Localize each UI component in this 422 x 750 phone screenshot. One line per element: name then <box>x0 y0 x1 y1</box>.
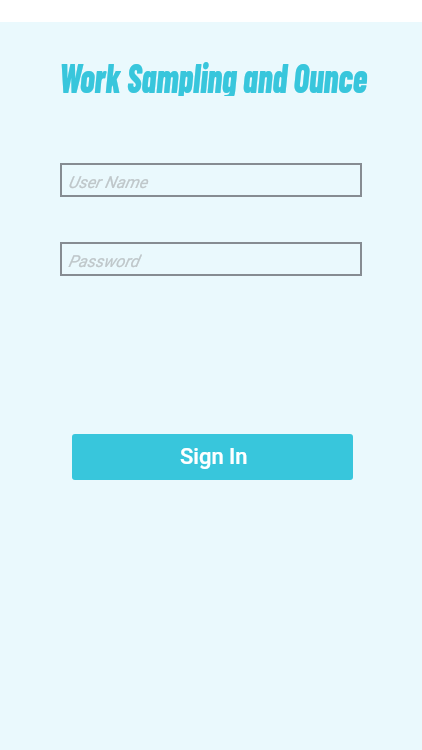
button[interactable]: Sign In <box>72 434 353 480</box>
staticText: Password <box>68 252 139 271</box>
staticText: Sign In <box>180 444 248 470</box>
staticText: User Name <box>68 173 148 192</box>
button[interactable]: Password <box>60 242 362 276</box>
button[interactable]: User Name <box>60 163 362 197</box>
staticText: Work Sampling and Ounce <box>59 52 367 96</box>
